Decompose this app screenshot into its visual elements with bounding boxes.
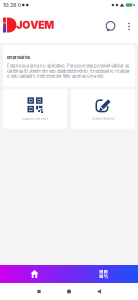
button[interactable]: Voltar bbox=[84, 283, 114, 300]
button[interactable]: VALIDAR CARTEIRA bbox=[3, 89, 67, 129]
staticText: CADASTRAR-SE bbox=[92, 117, 114, 120]
staticText: Esta é a sua área no aplicativo. Para qu… bbox=[7, 63, 130, 79]
button[interactable]: CADASTRAR-SE bbox=[71, 89, 135, 129]
button[interactable]: Início bbox=[54, 283, 84, 300]
button[interactable]: Mensagens bbox=[100, 15, 121, 38]
button[interactable]: Ler QR Code bbox=[69, 265, 138, 283]
staticText: VALIDAR CARTEIRA bbox=[21, 117, 48, 120]
staticText: 10:28 bbox=[3, 2, 16, 8]
staticText: JOVEM bbox=[16, 19, 54, 31]
button[interactable]: Recentes bbox=[24, 283, 54, 300]
button[interactable]: Início bbox=[0, 265, 69, 283]
staticText: Empresários bbox=[7, 55, 30, 60]
button[interactable]: Mais opções bbox=[121, 15, 137, 38]
